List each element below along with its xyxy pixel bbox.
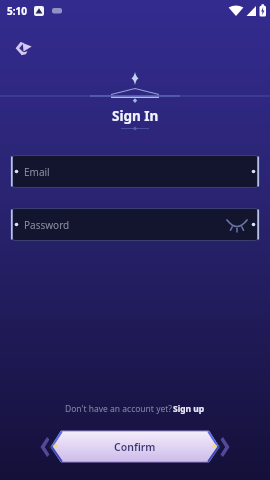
- staticText: Password: [24, 218, 70, 232]
- button[interactable]: Email: [11, 155, 259, 188]
- staticText: Confirm: [114, 440, 156, 454]
- staticText: 5:10: [7, 4, 27, 18]
- staticText: Email: [24, 165, 50, 179]
- button[interactable]: Password: [11, 208, 259, 241]
- button[interactable]: Confirm: [36, 428, 234, 465]
- button[interactable]: [10, 36, 36, 60]
- button[interactable]: Sign up: [173, 403, 205, 415]
- staticText: Sign In: [112, 107, 159, 125]
- staticText: Don't have an account yet?: [65, 403, 173, 415]
